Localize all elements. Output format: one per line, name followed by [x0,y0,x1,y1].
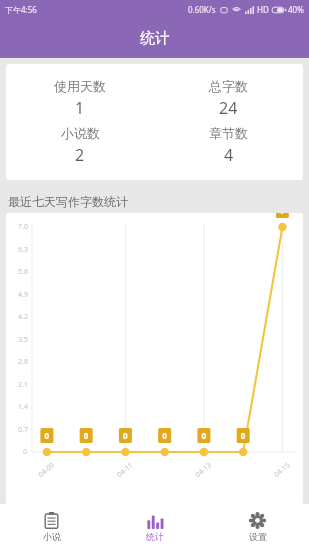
button[interactable]: 小说 [0,504,103,550]
staticText: 40% [288,4,304,15]
button[interactable]: 使用天数 [6,64,303,180]
button[interactable]: 设置 [206,504,309,550]
staticText: 最近七天写作字数统计 [8,194,128,209]
staticText: HD [257,4,269,15]
button[interactable] [6,213,303,504]
staticText: 使用天数 [54,78,106,94]
staticText: 章节数 [209,125,248,141]
staticText: 1 [75,97,85,119]
staticText: 统计 [140,29,170,48]
staticText: 总字数 [209,78,248,94]
staticText: 统计 [146,531,164,542]
staticText: 24 [219,97,238,119]
staticText: 小说数 [61,125,100,141]
staticText: 2 [75,144,85,166]
staticText: 4 [224,144,234,166]
staticText: 小说 [43,531,61,542]
staticText: 下午4:56 [5,4,37,15]
staticText: 设置 [249,531,267,542]
staticText: 0.60K/s [188,4,216,15]
button[interactable]: 统计 [103,504,206,550]
